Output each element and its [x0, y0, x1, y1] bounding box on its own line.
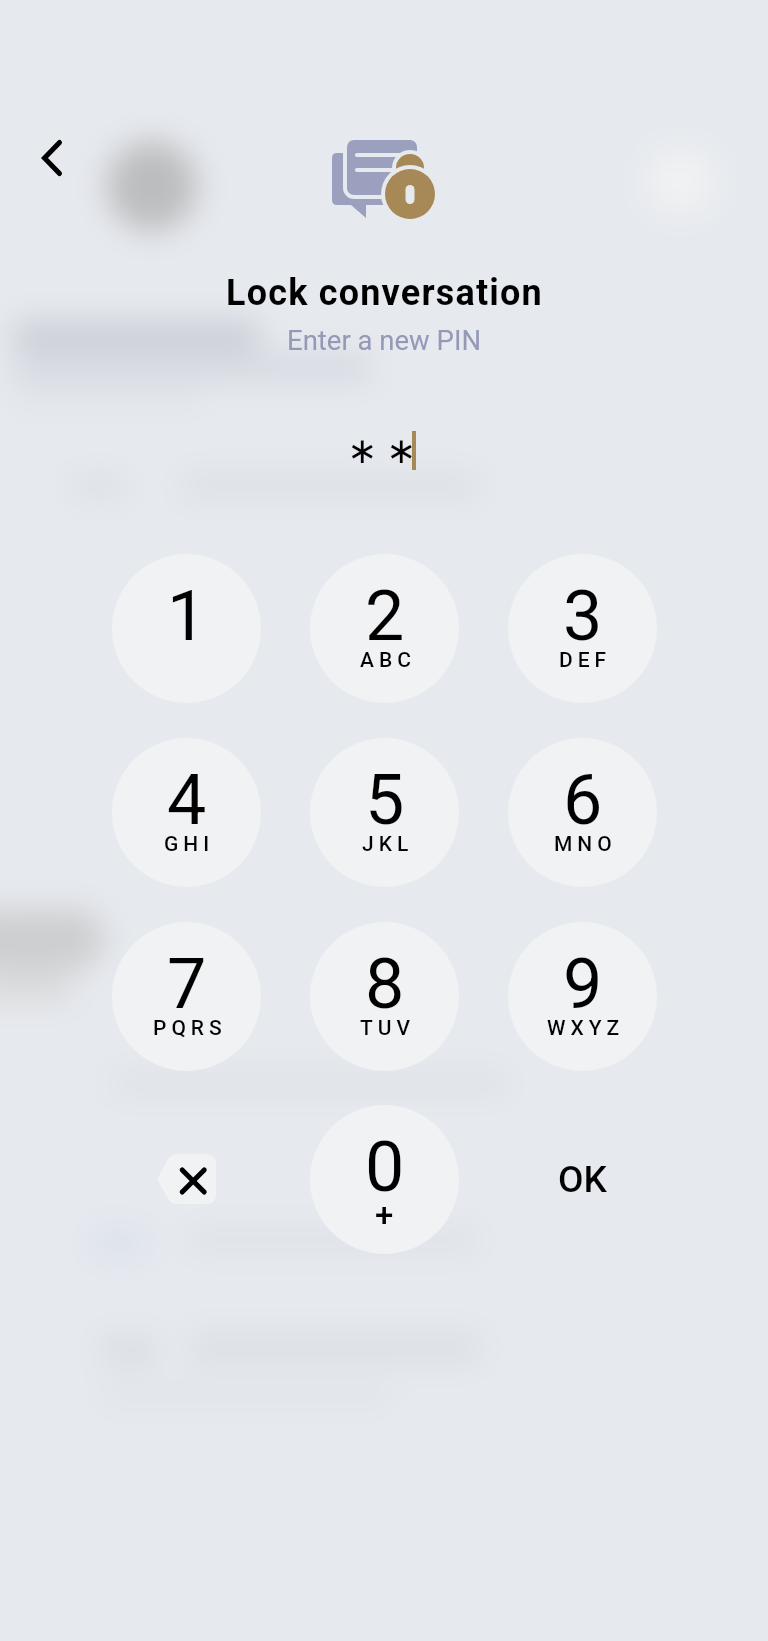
staticText: 0 — [365, 1126, 405, 1208]
staticText: 9 — [563, 943, 603, 1025]
staticText: 8 — [365, 943, 405, 1025]
button[interactable]: 1 — [112, 554, 261, 703]
staticText: PQRS — [153, 1016, 227, 1041]
staticText: 5 — [365, 759, 405, 841]
staticText: WXYZ — [547, 1016, 625, 1041]
button[interactable]: 3 — [508, 554, 657, 703]
button[interactable]: Back — [20, 126, 84, 190]
button[interactable]: 4 — [112, 738, 261, 887]
staticText: Lock conversation — [226, 272, 543, 314]
button[interactable]: 7 — [112, 922, 261, 1071]
staticText: 3 — [563, 575, 603, 657]
staticText: Enter a new PIN — [287, 324, 482, 356]
staticText: 2 — [365, 575, 405, 657]
staticText: 6 — [563, 759, 603, 841]
button[interactable]: 0 — [310, 1105, 459, 1254]
button[interactable]: 9 — [508, 922, 657, 1071]
staticText: DEF — [559, 648, 612, 673]
staticText: 4 — [167, 759, 207, 841]
staticText: 1 — [167, 575, 207, 657]
staticText: 7 — [167, 943, 207, 1025]
button[interactable]: 8 — [310, 922, 459, 1071]
staticText: ABC — [360, 648, 416, 673]
staticText: MNO — [554, 832, 617, 857]
staticText: GHI — [164, 832, 215, 857]
button[interactable]: 2 — [310, 554, 459, 703]
staticText: TUV — [360, 1016, 416, 1041]
button[interactable]: Backspace — [112, 1105, 260, 1253]
staticText: + — [375, 1196, 394, 1235]
staticText: JKL — [362, 832, 414, 857]
staticText: OK — [558, 1158, 607, 1201]
button[interactable]: 6 — [508, 738, 657, 887]
button[interactable]: 5 — [310, 738, 459, 887]
staticText: ∗ ∗ — [347, 430, 417, 472]
button[interactable]: OK — [508, 1105, 656, 1253]
